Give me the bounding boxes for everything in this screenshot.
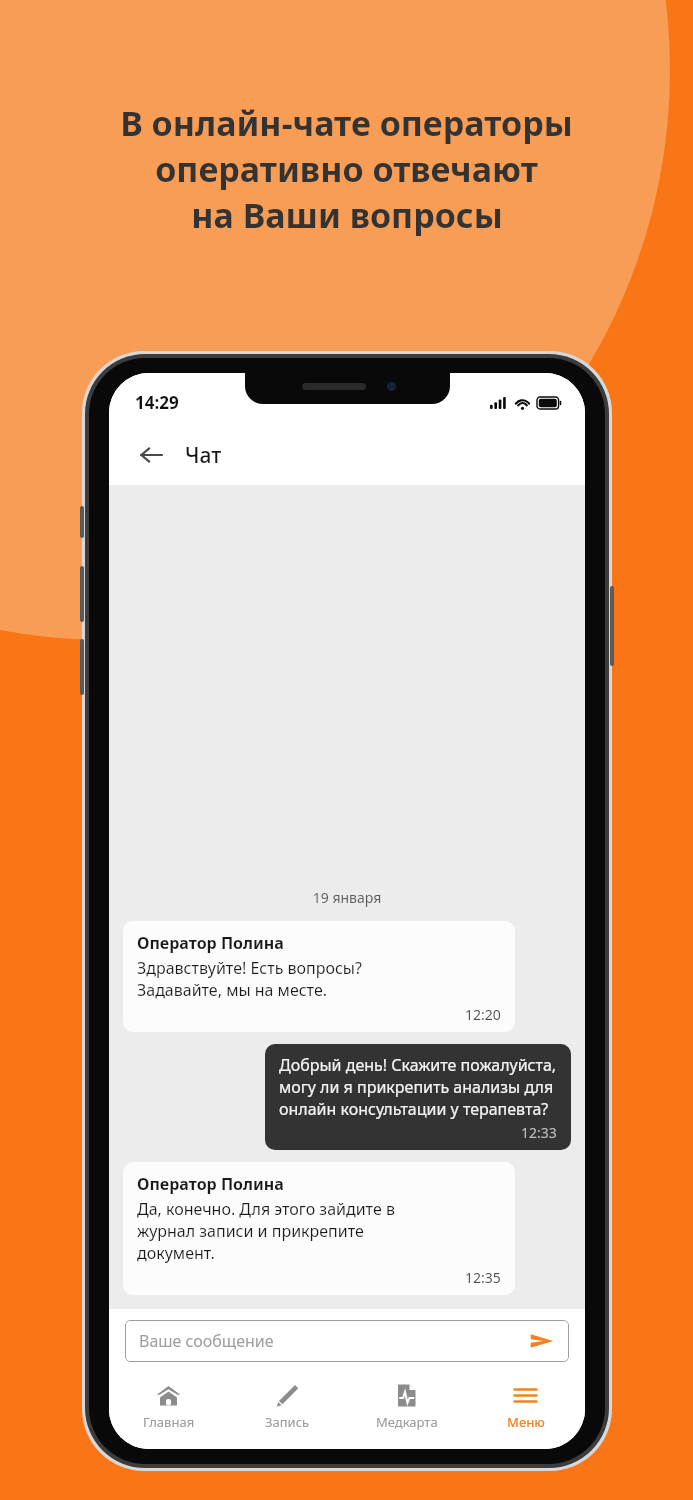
other: Send	[529, 1328, 555, 1354]
staticText: документ.	[137, 1242, 215, 1264]
staticText: Главная	[143, 1413, 195, 1431]
staticText: онлайн консультации у терапевта?	[279, 1098, 549, 1120]
staticText: Оператор Полина	[137, 932, 284, 954]
staticText: 14:29	[135, 391, 179, 414]
staticText: Да, конечно. Для этого зайдите в	[137, 1198, 395, 1220]
button[interactable]: Медкарта	[347, 1373, 466, 1449]
staticText: 12:35	[465, 1268, 501, 1287]
button[interactable]: Меню	[466, 1373, 585, 1449]
button[interactable]: Оператор Полина	[123, 921, 515, 1032]
staticText: могу ли я прикрепить анализы для	[279, 1076, 554, 1098]
staticText: Медкарта	[376, 1413, 438, 1431]
staticText: 12:33	[521, 1123, 557, 1142]
staticText: Здравствуйте! Есть вопросы?	[137, 957, 362, 979]
button[interactable]: Главная	[109, 1373, 228, 1449]
button[interactable]: Оператор Полина	[123, 1162, 515, 1295]
staticText: В онлайн-чате операторы	[120, 100, 573, 146]
staticText: Меню	[507, 1413, 545, 1431]
staticText: 12:20	[465, 1005, 501, 1024]
staticText: Чат	[185, 441, 222, 470]
staticText: 19 января	[109, 888, 585, 907]
staticText: Запись	[265, 1413, 310, 1431]
staticText: оперативно отвечают	[155, 146, 538, 192]
button[interactable]: Добрый день! Скажите пожалуйста,	[265, 1044, 571, 1150]
staticText: на Ваши вопросы	[191, 192, 503, 238]
staticText: Задавайте, мы на месте.	[137, 979, 327, 1001]
staticText: Добрый день! Скажите пожалуйста,	[279, 1054, 557, 1076]
button[interactable]: Ваше сообщение	[125, 1320, 569, 1362]
staticText: Оператор Полина	[137, 1173, 284, 1195]
button[interactable]: Запись	[228, 1373, 347, 1449]
staticText: журнал записи и прикрепите	[137, 1220, 364, 1242]
button[interactable]: Back	[131, 435, 171, 475]
staticText: Ваше сообщение	[139, 1330, 529, 1352]
